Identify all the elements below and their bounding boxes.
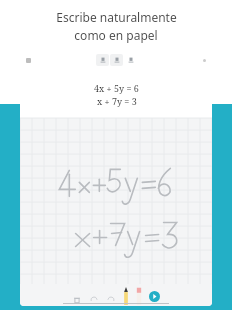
- button[interactable]: Tool 1: [96, 54, 109, 66]
- button[interactable]: Tool 3: [124, 54, 137, 66]
- button[interactable]: Delete: [72, 295, 82, 305]
- staticText: x + 7y = 3: [97, 95, 137, 107]
- button[interactable]: Solve: [149, 291, 160, 302]
- button[interactable]: Menu: [26, 58, 31, 63]
- button[interactable]: Redo: [106, 295, 116, 305]
- button[interactable]: Tool 2: [110, 54, 123, 66]
- button[interactable]: Pen: [123, 287, 129, 305]
- staticText: como en papel: [74, 27, 158, 43]
- button[interactable]: Undo: [89, 295, 99, 305]
- button[interactable]: Eraser: [136, 287, 142, 305]
- staticText: 4x + 5y = 6: [94, 82, 139, 94]
- staticText: Escribe naturalmente: [56, 9, 177, 25]
- button[interactable]: More options: [203, 59, 206, 62]
